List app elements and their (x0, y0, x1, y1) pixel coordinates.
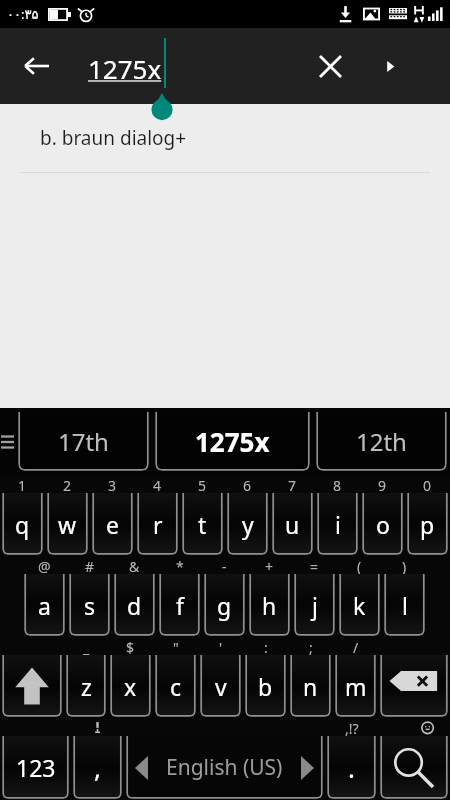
staticText: " (173, 638, 179, 655)
button[interactable]: o (362, 493, 403, 555)
button[interactable]: z (66, 655, 106, 717)
staticText: 123 (16, 752, 56, 783)
button[interactable]: y (227, 493, 268, 555)
staticText: ) (402, 557, 407, 574)
staticText: x (124, 671, 137, 702)
staticText: b. braun dialog+ (40, 125, 187, 151)
staticText: 17th (58, 425, 109, 458)
button[interactable]: 1275x (155, 412, 310, 471)
button[interactable]: 17th (18, 412, 149, 471)
staticText: b (258, 671, 273, 702)
button[interactable]: Period (327, 736, 376, 799)
button[interactable]: m (335, 655, 376, 717)
button[interactable]: v (200, 655, 241, 717)
staticText: # (85, 557, 95, 574)
staticText: $ (126, 638, 135, 655)
button[interactable]: t (182, 493, 223, 555)
staticText: 1 (18, 476, 27, 493)
button[interactable]: More options (370, 46, 410, 86)
button[interactable]: k (339, 574, 380, 636)
button[interactable]: b (245, 655, 286, 717)
staticText: @ (38, 557, 51, 574)
staticText: & (129, 557, 140, 574)
button[interactable]: u (272, 493, 313, 555)
staticText: ( (357, 557, 362, 574)
button[interactable]: Clear query (306, 42, 354, 90)
staticText: , (94, 750, 101, 785)
staticText: h (262, 590, 277, 621)
staticText: 4 (153, 476, 162, 493)
staticText: . (348, 750, 355, 785)
staticText: 8 (333, 476, 342, 493)
staticText: 6 (243, 476, 252, 493)
staticText: y (242, 509, 254, 540)
staticText: ۰۰:۳۵ (7, 5, 39, 23)
staticText: z (81, 671, 92, 702)
staticText: w (58, 509, 77, 540)
staticText: 3 (108, 476, 117, 493)
staticText: l (402, 590, 408, 621)
button[interactable]: w (47, 493, 88, 555)
staticText: English (US) (166, 753, 283, 782)
staticText: 0 (423, 476, 432, 493)
button[interactable]: r (137, 493, 178, 555)
staticText: d (127, 590, 142, 621)
staticText: ' (219, 638, 223, 655)
button[interactable]: Comma (73, 736, 122, 799)
staticText: _ (83, 638, 90, 655)
staticText: f (176, 590, 184, 621)
button[interactable]: x (110, 655, 151, 717)
staticText: ; (309, 638, 313, 655)
staticText: 12th (356, 425, 407, 458)
staticText: = (310, 557, 319, 574)
staticText: s (84, 590, 96, 621)
staticText: 9 (378, 476, 387, 493)
button[interactable]: Backspace (380, 655, 448, 717)
staticText: u (285, 509, 300, 540)
staticText: q (15, 509, 30, 540)
button[interactable]: s (69, 574, 110, 636)
staticText: r (153, 509, 163, 540)
staticText: a (38, 590, 51, 621)
staticText: e (106, 509, 119, 540)
staticText: i (335, 509, 341, 540)
button[interactable]: Space, English (US) (126, 736, 323, 799)
button[interactable]: f (159, 574, 200, 636)
staticText: t (198, 509, 207, 540)
button[interactable]: c (155, 655, 196, 717)
staticText: : (264, 638, 268, 655)
button[interactable]: b. braun dialog+ (0, 104, 450, 172)
button[interactable]: Shift (2, 655, 62, 717)
button[interactable]: q (2, 493, 43, 555)
staticText: o (376, 509, 390, 540)
staticText: c (170, 671, 182, 702)
staticText: / (353, 638, 359, 655)
staticText: n (303, 671, 318, 702)
button[interactable]: Numbers (2, 736, 69, 799)
button[interactable]: 12th (316, 412, 447, 471)
button[interactable]: g (204, 574, 245, 636)
button[interactable]: Back (12, 42, 60, 90)
staticText: m (345, 671, 367, 702)
staticText: j (312, 590, 318, 621)
staticText: + (265, 557, 274, 574)
staticText: 1275x (88, 51, 162, 86)
staticText: g (217, 590, 232, 621)
button[interactable]: i (317, 493, 358, 555)
button[interactable]: n (290, 655, 331, 717)
staticText: p (420, 509, 435, 540)
button[interactable]: l (384, 574, 425, 636)
button[interactable]: h (249, 574, 290, 636)
button[interactable]: a (24, 574, 65, 636)
button[interactable]: d (114, 574, 155, 636)
staticText: v (215, 671, 227, 702)
button[interactable]: j (294, 574, 335, 636)
staticText: ,!? (345, 719, 359, 736)
staticText: k (353, 590, 366, 621)
button[interactable]: Search (380, 736, 448, 799)
button[interactable]: e (92, 493, 133, 555)
button[interactable]: p (407, 493, 448, 555)
staticText: - (222, 557, 227, 574)
staticText: 1275x (195, 424, 270, 459)
staticText: * (176, 557, 184, 574)
